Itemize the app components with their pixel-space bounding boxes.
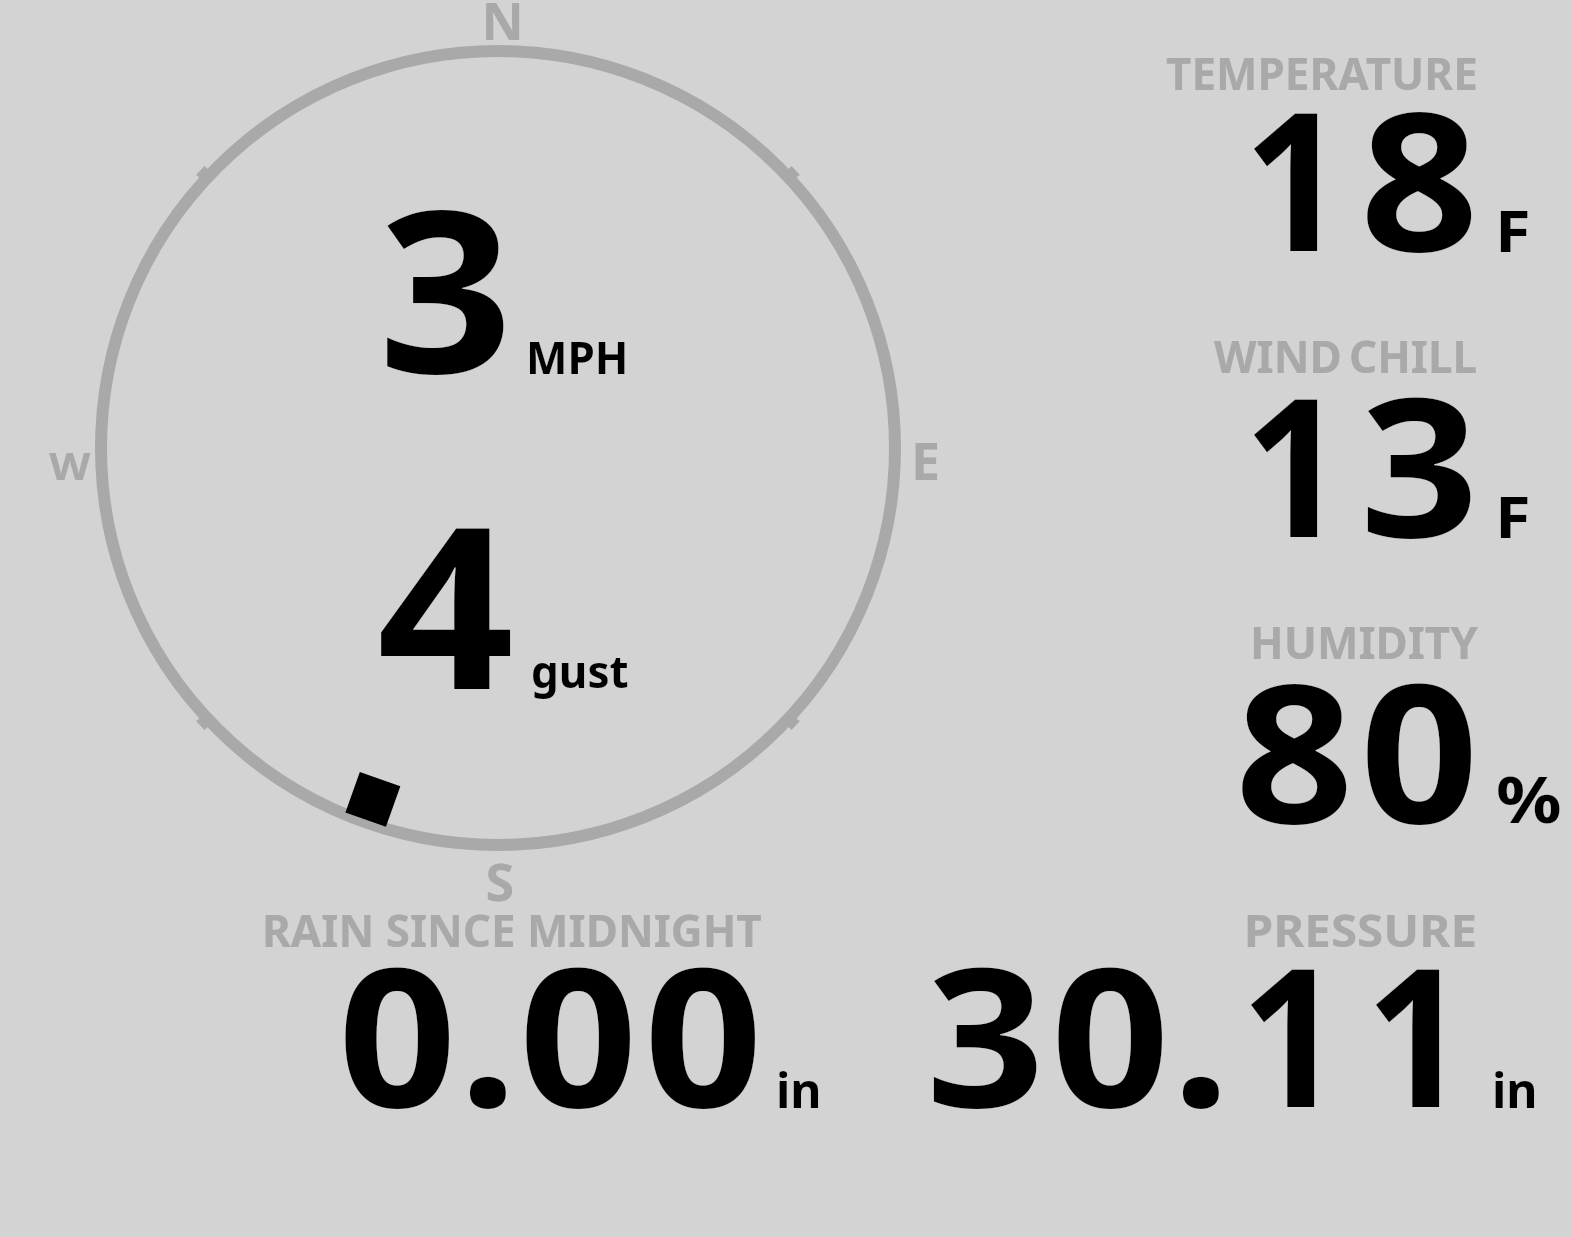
button[interactable]: Weather station dashboard [0,0,1571,1237]
button[interactable]: Wind 3 MPH, gust 4, direction south-sout… [60,20,960,910]
button[interactable]: Wind chill 13 F [1120,325,1571,555]
button[interactable]: Humidity 80 percent [1120,610,1571,840]
button[interactable]: Pressure 30.11 in [900,900,1560,1130]
button[interactable]: Rain since midnight 0.00 in [240,900,860,1130]
button[interactable]: Temperature 18 F [1120,40,1571,270]
